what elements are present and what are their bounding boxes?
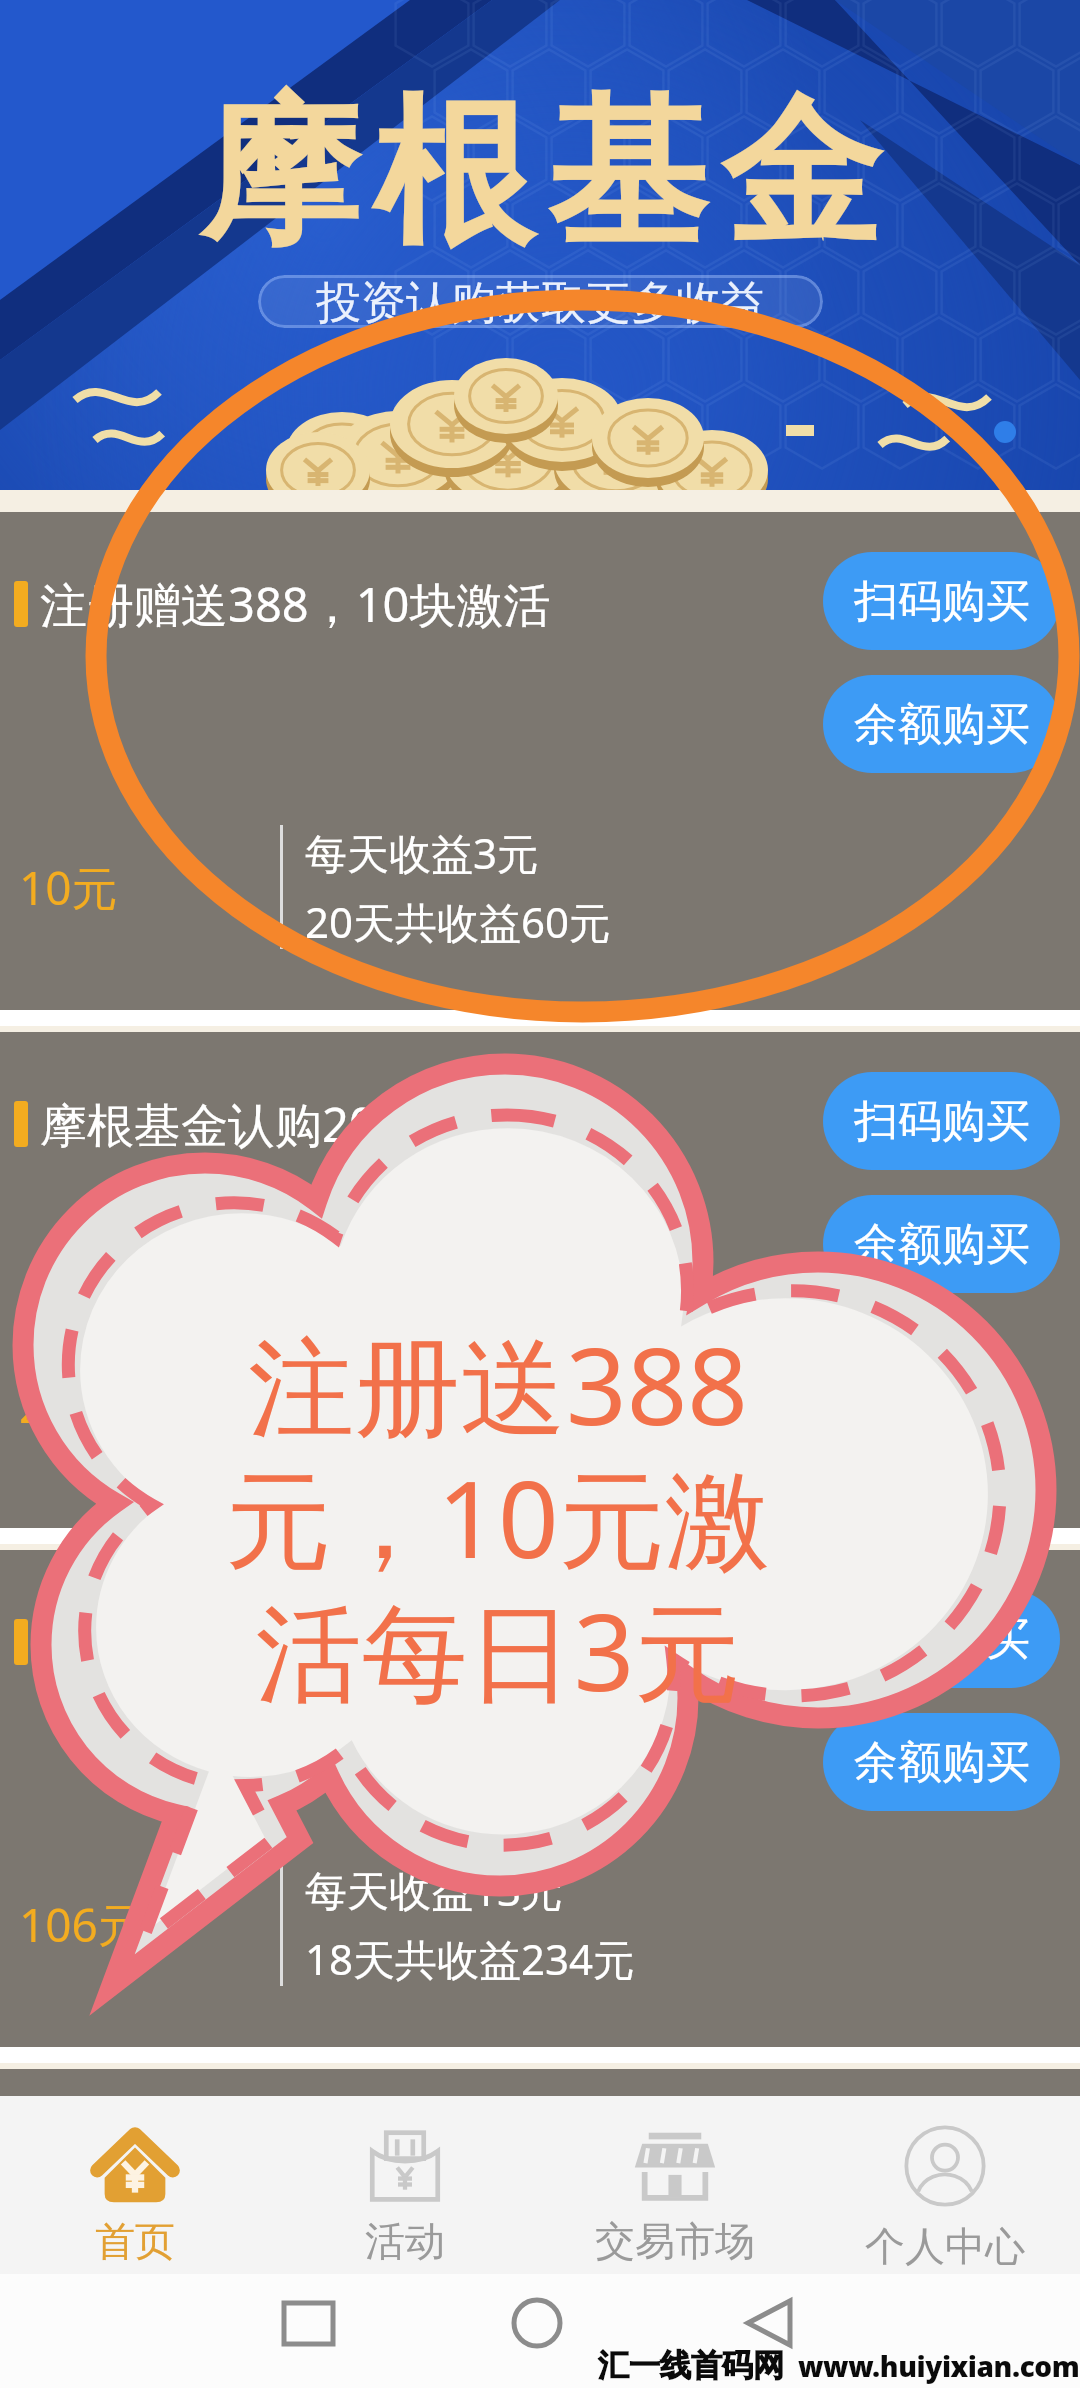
button[interactable]: 首页 <box>0 2096 270 2274</box>
staticText: 余额购买 <box>854 697 1030 752</box>
staticText: 30天共收益30元 <box>305 1411 612 1468</box>
staticText: 扫码购买 <box>854 1094 1030 1149</box>
staticText: 活动 <box>365 2216 445 2266</box>
button[interactable]: 活动 <box>270 2096 540 2274</box>
staticText: 每天收益13元 <box>305 1861 564 1918</box>
button[interactable]: 扫码购买 <box>823 552 1060 650</box>
staticText: 每天收益1元 <box>305 1342 540 1399</box>
staticText: 注册送388 元，10元激 活每日3元 <box>225 1312 771 1723</box>
button[interactable]: 余额购买 <box>823 1195 1060 1293</box>
staticText: 首页 <box>95 2216 175 2266</box>
button[interactable]: 注册赠送388，10块激活 <box>0 512 1080 1010</box>
staticText: 10元 <box>19 856 118 919</box>
staticText: 交易市场 <box>595 2216 755 2266</box>
staticText: 余额购买 <box>854 1217 1030 1272</box>
button[interactable]: 交易市场 <box>540 2096 810 2274</box>
staticText: 20元 <box>19 1374 118 1437</box>
staticText: 个人中心 <box>865 2221 1025 2271</box>
button[interactable]: 个人中心 <box>810 2096 1080 2274</box>
button[interactable]: 余额购买 <box>823 675 1060 773</box>
staticText: 18天共收益234元 <box>305 1930 636 1987</box>
staticText: 20天共收益60元 <box>305 893 612 950</box>
button[interactable]: 扫码购买 <box>823 1590 1060 1688</box>
staticText: 余额购买 <box>854 1735 1030 1790</box>
staticText: 扫码购买 <box>854 1612 1030 1667</box>
staticText: 扫码购买 <box>854 574 1030 629</box>
staticText: 注册赠送388，10块激活 <box>40 572 551 636</box>
staticText: 摩根基金认购13股 <box>40 1610 423 1674</box>
staticText: 汇一线首码网 <box>598 2346 784 2385</box>
staticText: 摩根基金 <box>192 74 888 276</box>
button[interactable]: 摩根基金认购13股 <box>0 1550 1080 2047</box>
staticText: 每天收益3元 <box>305 824 540 881</box>
button[interactable]: 扫码购买 <box>823 1072 1060 1170</box>
button[interactable]: 余额购买 <box>823 1713 1060 1811</box>
staticText: 摩根基金认购20股 <box>40 1092 423 1156</box>
staticText: 投资认购获取更多收益 <box>316 275 766 328</box>
button[interactable]: 摩根基金认购20股 <box>0 1032 1080 1528</box>
staticText: www.huiyixian.com <box>798 2347 1080 2385</box>
staticText: 106元 <box>19 1893 144 1956</box>
